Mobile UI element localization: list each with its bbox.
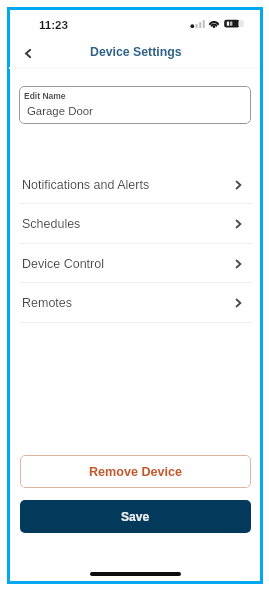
button[interactable]: Remotes (9, 283, 260, 323)
button[interactable]: Schedules (9, 204, 260, 244)
button[interactable]: Remove Device (20, 455, 251, 488)
staticText: Remotes (22, 296, 236, 310)
staticText: Device Settings (90, 45, 182, 59)
staticText: Schedules (22, 217, 236, 231)
button[interactable]: Save (20, 500, 251, 533)
staticText: Notifications and Alerts (22, 178, 236, 192)
button[interactable]: Device Control (9, 244, 260, 284)
button[interactable]: Edit Name (19, 86, 251, 124)
staticText: Device Control (22, 257, 236, 271)
button[interactable]: Notifications and Alerts (9, 165, 260, 205)
staticText: 11:23 (39, 18, 69, 31)
button[interactable]: Back (16, 41, 40, 65)
staticText: Save (121, 510, 150, 524)
staticText: Garage Door (27, 105, 93, 118)
staticText: Edit Name (24, 91, 66, 100)
staticText: Remove Device (89, 465, 183, 479)
